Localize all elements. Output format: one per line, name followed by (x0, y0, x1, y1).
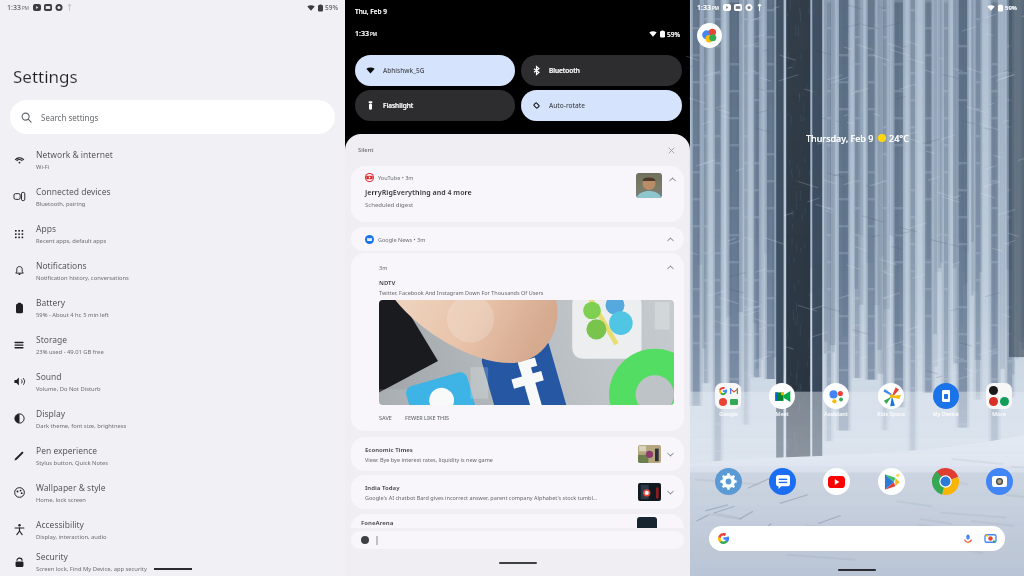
button[interactable] (709, 526, 1005, 551)
staticText: 3m (379, 264, 388, 271)
staticText: JerryRigEverything and 4 more (365, 188, 472, 198)
button[interactable]: Display (0, 400, 345, 437)
staticText: Wallpaper & style (36, 482, 106, 494)
staticText: Google's AI chatbot Bard gives incorrect… (365, 494, 598, 501)
button[interactable]: More (984, 383, 1014, 417)
staticText: Thursday, Feb 9 (806, 132, 874, 144)
button[interactable]: 3m (351, 253, 684, 431)
button[interactable]: Auto-rotate (521, 90, 682, 121)
button[interactable]: Kids Space (876, 383, 906, 417)
staticText: Scheduled digest (365, 201, 414, 209)
staticText: Economic Times (365, 446, 413, 454)
staticText: Notifications (36, 260, 87, 272)
staticText: Pen experience (36, 445, 98, 457)
staticText: Google News • 3m (378, 236, 426, 243)
staticText: Sound (36, 371, 62, 383)
staticText: Bluetooth (549, 66, 580, 75)
staticText: More (992, 410, 1006, 417)
staticText: PM (370, 31, 377, 37)
button[interactable]: FEWER LIKE THIS (405, 414, 450, 421)
staticText: Flashlight (383, 101, 414, 110)
button[interactable]: Notifications (0, 252, 345, 289)
button[interactable]: Apps (0, 215, 345, 252)
button[interactable]: Network & internet (0, 141, 345, 178)
button[interactable]: Google News • 3m (351, 227, 684, 251)
staticText: 24°C (889, 132, 909, 144)
button[interactable]: app (984, 468, 1014, 495)
staticText: 1:33 (355, 29, 369, 39)
staticText: Storage (36, 334, 68, 346)
staticText: Volume, Do Not Disturb (36, 385, 101, 393)
button[interactable]: Meet (767, 383, 797, 417)
staticText: 59% (667, 30, 680, 39)
staticText: Silent (358, 146, 374, 154)
button[interactable]: Storage (0, 326, 345, 363)
staticText: Stylus button, Quick Notes (36, 459, 109, 467)
staticText: Dark theme, font size, brightness (36, 422, 127, 430)
button[interactable]: app (821, 468, 851, 495)
button[interactable]: Economic Times (351, 437, 684, 471)
staticText: Recent apps, default apps (36, 237, 107, 245)
staticText: 1:33 (697, 3, 711, 13)
staticText: India Today (365, 484, 400, 492)
button[interactable]: app (767, 468, 797, 495)
button[interactable]: Pen experience (0, 437, 345, 474)
staticText: NDTV (379, 279, 396, 287)
button[interactable]: SAVE (379, 414, 392, 421)
staticText: Kids Space (877, 410, 905, 417)
button[interactable]: YouTube • 3m (351, 166, 684, 222)
staticText: Thu, Feb 9 (355, 7, 387, 16)
staticText: Display (36, 408, 65, 420)
button[interactable]: India Today (351, 475, 684, 509)
button[interactable]: Sound (0, 363, 345, 400)
button[interactable]: Battery (0, 289, 345, 326)
button[interactable]: Flashlight (355, 90, 515, 121)
button[interactable]: Google (697, 23, 722, 48)
staticText: Bluetooth, pairing (36, 200, 86, 208)
button[interactable]: Wallpaper & style (0, 474, 345, 511)
staticText: Display, interaction, audio (36, 533, 107, 541)
button[interactable]: app (876, 468, 906, 495)
button[interactable]: Do not disturb (361, 536, 369, 544)
staticText: Meet (775, 410, 789, 417)
button[interactable]: app (930, 468, 960, 495)
staticText: Wi-Fi (36, 163, 50, 171)
staticText: 59% - About 4 hr, 5 min left (36, 311, 109, 319)
staticText: View: Bye bye interest rates, liquidity … (365, 456, 493, 463)
staticText: 1:33 (7, 3, 21, 13)
button[interactable]: My Device (930, 383, 960, 417)
staticText: Network & internet (36, 149, 113, 161)
button[interactable]: Connected devices (0, 178, 345, 215)
staticText: 23% used - 49.01 GB free (36, 348, 104, 356)
button[interactable]: app (713, 468, 743, 495)
button[interactable]: Assistant (821, 383, 851, 417)
staticText: Security (36, 551, 68, 563)
staticText: Abhishwk_5G (383, 66, 425, 75)
button[interactable]: Abhishwk_5G (355, 55, 515, 86)
staticText: Accessibility (36, 519, 84, 531)
button[interactable]: Close (666, 145, 677, 156)
staticText: Screen lock, Find My Device, app securit… (36, 565, 147, 573)
button[interactable]: Google (713, 383, 743, 417)
staticText: PM (712, 5, 719, 11)
staticText: 59% (325, 3, 338, 12)
button[interactable]: Bluetooth (521, 55, 682, 86)
button[interactable]: Accessibility (0, 511, 345, 548)
staticText: Apps (36, 223, 56, 235)
staticText: Search settings (41, 112, 99, 123)
staticText: PM (22, 5, 29, 11)
staticText: Notification history, conversations (36, 274, 129, 282)
staticText: FoneArena (361, 519, 394, 527)
staticText: Twitter, Facebook And Instagram Down For… (379, 289, 544, 296)
staticText: YouTube • 3m (378, 174, 414, 181)
button[interactable]: Collapse (666, 173, 678, 185)
staticText: Connected devices (36, 186, 111, 198)
button[interactable]: Security (0, 548, 345, 576)
button[interactable]: Search settings (10, 100, 335, 134)
staticText: 59% (1005, 4, 1017, 12)
staticText: Battery (36, 297, 66, 309)
staticText: Assistant (824, 410, 848, 417)
staticText: My Device (932, 410, 959, 417)
staticText: Home, lock screen (36, 496, 86, 504)
staticText: Auto-rotate (549, 101, 585, 110)
